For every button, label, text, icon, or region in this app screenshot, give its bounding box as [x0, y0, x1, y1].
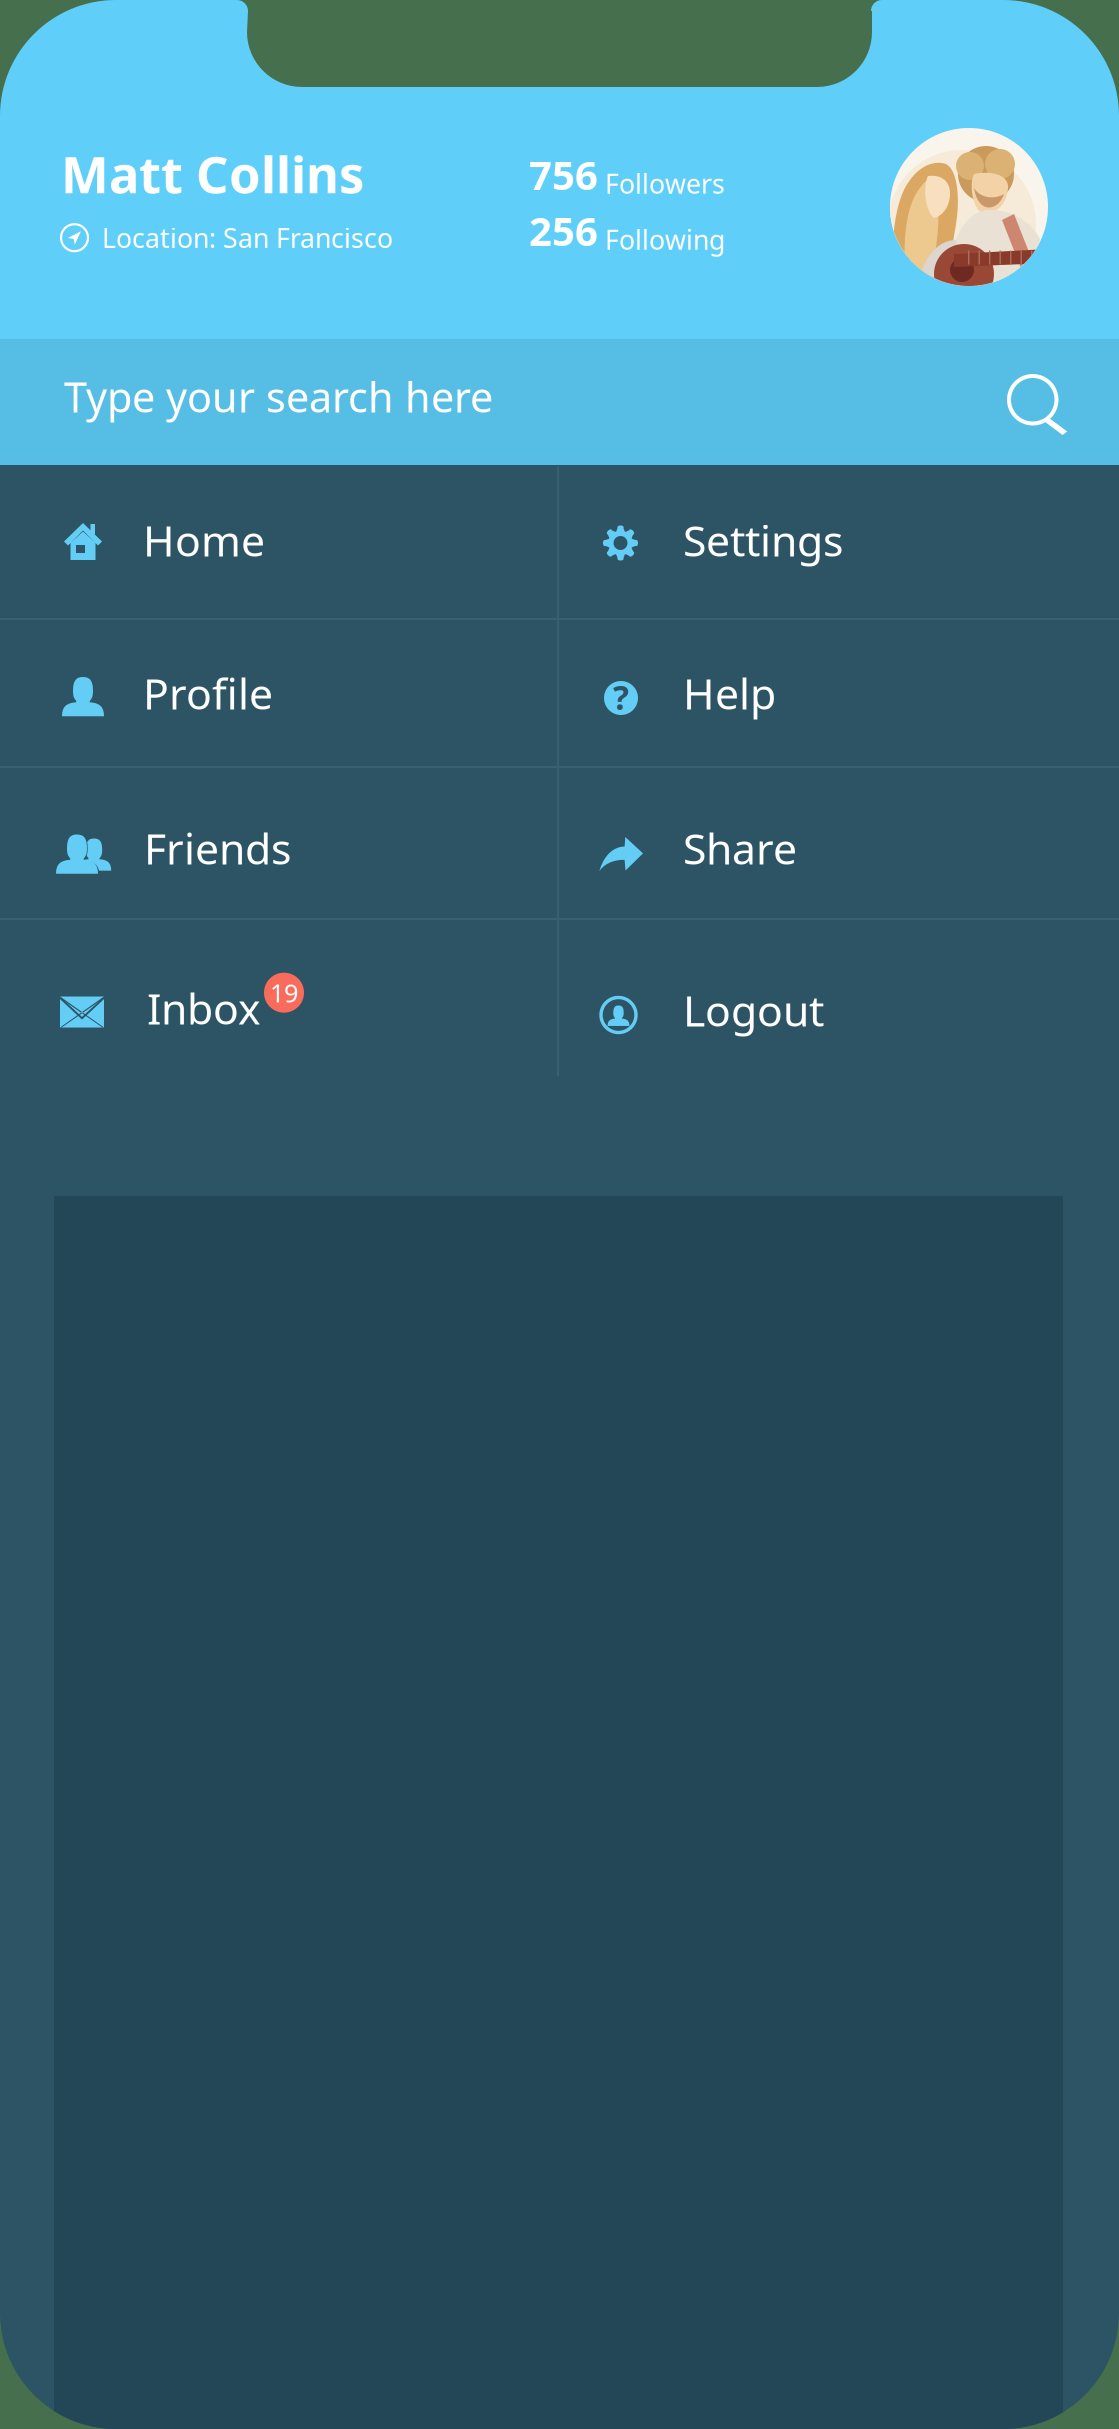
staticText: 256	[529, 204, 598, 257]
staticText: Settings	[683, 512, 843, 568]
button[interactable]: Inbox	[0, 920, 557, 1076]
staticText: Following	[605, 222, 725, 257]
button[interactable]: Logout	[559, 920, 1119, 1076]
button[interactable]: Friends	[0, 768, 557, 918]
staticText: Share	[683, 820, 797, 876]
button[interactable]: Type your search here	[0, 339, 1119, 465]
staticText: Help	[683, 665, 776, 721]
staticText: 756	[529, 148, 598, 201]
button[interactable]: Share	[559, 768, 1119, 918]
staticText: Friends	[144, 820, 291, 876]
staticText: 19	[270, 976, 298, 1009]
staticText: Followers	[605, 166, 725, 201]
button[interactable]: Profile	[0, 620, 557, 766]
button[interactable]: Settings	[559, 466, 1119, 618]
staticText: Logout	[683, 982, 824, 1038]
staticText: Inbox	[147, 980, 261, 1036]
staticText: Matt Collins	[61, 140, 364, 207]
staticText: Profile	[143, 665, 273, 721]
button[interactable]: Home	[0, 466, 557, 618]
staticText: Home	[143, 512, 265, 568]
button[interactable]: ?	[559, 620, 1119, 766]
staticText: Location: San Francisco	[102, 220, 393, 255]
staticText: ?	[613, 675, 629, 719]
staticText: Type your search here	[64, 369, 493, 424]
